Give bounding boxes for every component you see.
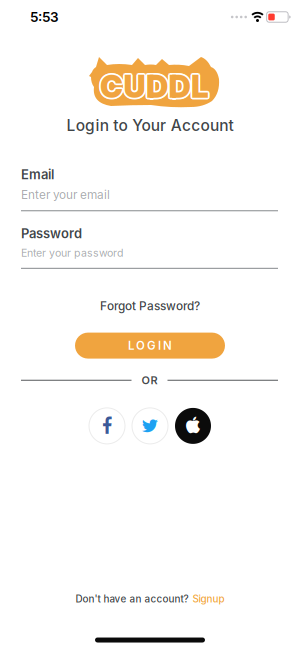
staticText: Email	[21, 167, 54, 182]
staticText: 5:53	[30, 9, 59, 25]
staticText: CUDDL	[99, 66, 208, 104]
staticText: CUDDL	[100, 68, 209, 105]
staticText: OR	[141, 374, 157, 387]
staticText: LOGIN	[128, 339, 172, 352]
staticText: CUDDL	[99, 69, 208, 106]
staticText: Enter your password	[21, 246, 123, 259]
staticText: CUDDL	[98, 68, 207, 105]
button[interactable]: Login with Twitter	[132, 408, 168, 444]
button[interactable]: Login with Facebook	[89, 408, 125, 444]
button[interactable]: Signup	[192, 593, 224, 605]
staticText: CUDDL	[101, 66, 210, 104]
staticText: 	[141, 417, 158, 435]
staticText: Forgot Password?	[100, 299, 200, 313]
button[interactable]: Login with Apple	[175, 408, 211, 444]
staticText: CUDDL	[102, 68, 211, 105]
staticText: 	[102, 417, 112, 435]
staticText: Login to Your Account	[66, 116, 233, 135]
staticText: CUDDL	[100, 69, 209, 107]
staticText: 	[186, 417, 200, 435]
staticText: Don't have an account?	[75, 593, 188, 605]
staticText: Enter your email	[21, 187, 110, 202]
button[interactable]: Forgot Password?	[100, 299, 200, 313]
staticText: Password	[21, 226, 82, 241]
staticText: CUDDL	[101, 69, 210, 106]
staticText: CUDDL	[100, 66, 209, 103]
button[interactable]: LOGIN	[75, 333, 225, 359]
staticText: Signup	[192, 593, 224, 605]
